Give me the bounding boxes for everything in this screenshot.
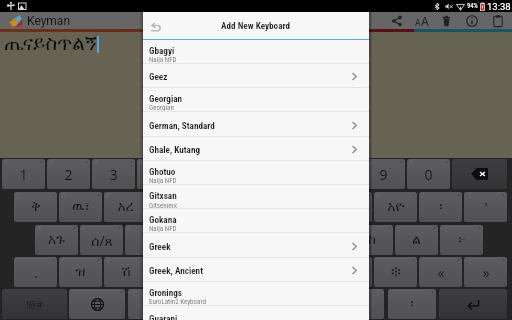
button[interactable]: Gbagyi <box>143 40 369 64</box>
button[interactable]: Z <box>59 257 102 287</box>
button[interactable]: 5 <box>182 159 225 189</box>
staticText: 5 <box>184 159 188 167</box>
button[interactable]: Gokana <box>143 209 369 233</box>
staticText: 3 <box>94 159 98 167</box>
staticText: Georgian <box>149 104 174 112</box>
button[interactable]: !@# <box>2 289 67 319</box>
button[interactable]: Ghale, Kutang <box>143 137 369 161</box>
button[interactable]: bksp <box>452 159 507 189</box>
button[interactable]: 4 <box>137 159 180 189</box>
staticText: ' <box>484 198 488 217</box>
button[interactable]: S <box>80 225 123 255</box>
button[interactable]: W <box>59 192 102 222</box>
button[interactable]: 9 <box>362 159 405 189</box>
staticText: 9 <box>379 165 388 184</box>
button[interactable]: 0 <box>407 159 450 189</box>
staticText: X <box>106 257 110 265</box>
button[interactable]: Ghotuo <box>143 161 369 185</box>
button[interactable]: 7 <box>272 159 315 189</box>
staticText: ዉ፣ <box>72 200 90 214</box>
button[interactable]: Gitxsan <box>143 185 369 209</box>
staticText: የ <box>257 200 264 214</box>
button[interactable]: H <box>260 225 303 255</box>
staticText: Gbagyi <box>149 45 175 56</box>
button[interactable]: R <box>149 192 192 222</box>
button[interactable]: B <box>239 257 282 287</box>
staticText: ች <box>166 265 176 279</box>
staticText: 4 <box>154 165 163 184</box>
button[interactable]: V <box>194 257 237 287</box>
button[interactable]: « <box>419 257 462 287</box>
button[interactable]: enter <box>439 289 507 319</box>
staticText: አረ <box>117 200 134 214</box>
button[interactable] <box>128 289 384 319</box>
button[interactable]: 1 <box>2 159 45 189</box>
button[interactable]: Georgian <box>143 88 369 112</box>
button[interactable]: » <box>464 257 507 287</box>
button[interactable]: ' <box>464 192 507 222</box>
button[interactable]: German, Standard <box>143 113 369 137</box>
button[interactable]: globe <box>69 289 125 319</box>
button[interactable]: Guarani <box>143 306 369 320</box>
button[interactable]: . <box>14 257 57 287</box>
button[interactable]: Greek, Ancient <box>143 258 369 282</box>
button[interactable]: X <box>104 257 147 287</box>
staticText: N <box>286 257 291 265</box>
staticText: ሽ <box>121 265 131 279</box>
button[interactable]: 2 <box>47 159 90 189</box>
button[interactable]: A <box>35 225 78 255</box>
button[interactable]: Gronings <box>143 282 369 306</box>
button[interactable]: O <box>374 192 417 222</box>
staticText: O <box>376 192 381 200</box>
button[interactable]: L <box>395 225 438 255</box>
button[interactable]: E <box>104 192 147 222</box>
button[interactable]: Delete <box>434 12 459 29</box>
button[interactable]: 3 <box>92 159 135 189</box>
button[interactable]: Share <box>384 12 409 29</box>
button[interactable]: Clipboard <box>484 12 511 29</box>
staticText: » <box>482 263 490 282</box>
staticText: Naija NFD <box>149 177 177 185</box>
button[interactable]: C <box>149 257 192 287</box>
button[interactable]: P <box>419 192 462 222</box>
staticText: 4 <box>139 159 143 167</box>
staticText: « <box>437 263 445 282</box>
staticText: ደ <box>143 233 151 247</box>
staticText: Gitxsan <box>149 190 177 201</box>
button[interactable]: Y <box>239 192 282 222</box>
button[interactable]: M <box>329 257 372 287</box>
staticText: Ghale, Kutang <box>149 144 201 155</box>
button[interactable]: I <box>329 192 372 222</box>
button[interactable]: N <box>284 257 327 287</box>
button[interactable]: T <box>194 192 237 222</box>
button[interactable]: U <box>284 192 327 222</box>
button[interactable]: ፡ <box>388 289 436 319</box>
staticText: E <box>106 192 110 200</box>
staticText: V <box>196 257 200 265</box>
button[interactable]: Geez <box>143 64 369 88</box>
button[interactable]: 8 <box>317 159 360 189</box>
button[interactable]: ፦ <box>440 225 483 255</box>
button[interactable]: J <box>305 225 348 255</box>
button[interactable]: ፨ <box>374 257 417 287</box>
staticText: 6 <box>229 159 233 167</box>
staticText: 0 <box>409 159 413 167</box>
button[interactable]: Greek <box>143 234 369 258</box>
button[interactable]: 6 <box>227 159 270 189</box>
button[interactable]: K <box>350 225 393 255</box>
staticText: 2 <box>49 159 53 167</box>
button[interactable]: G <box>215 225 258 255</box>
button[interactable]: Info <box>459 12 484 29</box>
button[interactable]: F <box>170 225 213 255</box>
staticText: Q <box>16 192 21 200</box>
button[interactable]: Back <box>143 14 169 41</box>
button[interactable]: D <box>125 225 168 255</box>
button[interactable]: Text size <box>409 12 434 29</box>
button[interactable]: Q <box>14 192 57 222</box>
